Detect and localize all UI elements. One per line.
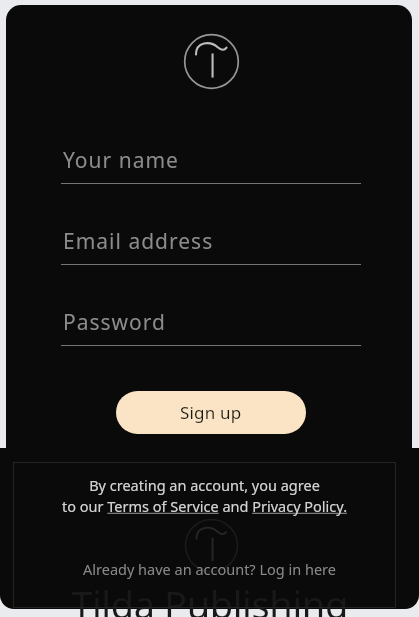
staticText: Already have an account? Log in here xyxy=(83,559,336,579)
button[interactable]: Already have an account? Log in here xyxy=(60,558,359,580)
other: Tilda logo xyxy=(183,33,240,90)
staticText: Email address xyxy=(63,227,214,256)
button[interactable]: Sign up xyxy=(116,391,306,434)
staticText: Your name xyxy=(63,146,179,175)
button[interactable]: Email address xyxy=(61,220,361,265)
button[interactable]: Your name xyxy=(61,139,361,184)
staticText: Password xyxy=(63,308,166,337)
staticText: Sign up xyxy=(180,401,242,424)
staticText: By creating an account, you agree xyxy=(13,475,396,495)
button[interactable]: to our Terms of Service and Privacy Poli… xyxy=(13,496,396,516)
staticText: Tilda Publishing xyxy=(0,578,419,617)
button[interactable]: Password xyxy=(61,301,361,346)
